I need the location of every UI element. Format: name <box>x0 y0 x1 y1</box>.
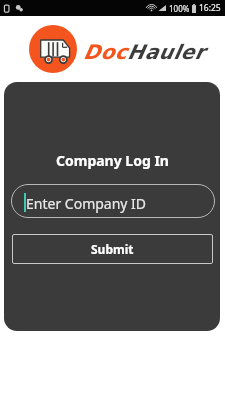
staticText: 16:25 <box>199 2 221 14</box>
staticText: Submit <box>91 241 134 257</box>
staticText: 100% <box>169 3 190 14</box>
staticText: Enter Company ID <box>26 194 147 213</box>
staticText: Company Log In <box>56 151 169 170</box>
button[interactable]: Submit <box>12 234 213 264</box>
staticText: Doc <box>84 40 128 63</box>
staticText: Hauler <box>128 40 206 63</box>
other: DocHauler logo <box>29 25 77 73</box>
button[interactable]: Enter Company ID <box>11 184 215 218</box>
